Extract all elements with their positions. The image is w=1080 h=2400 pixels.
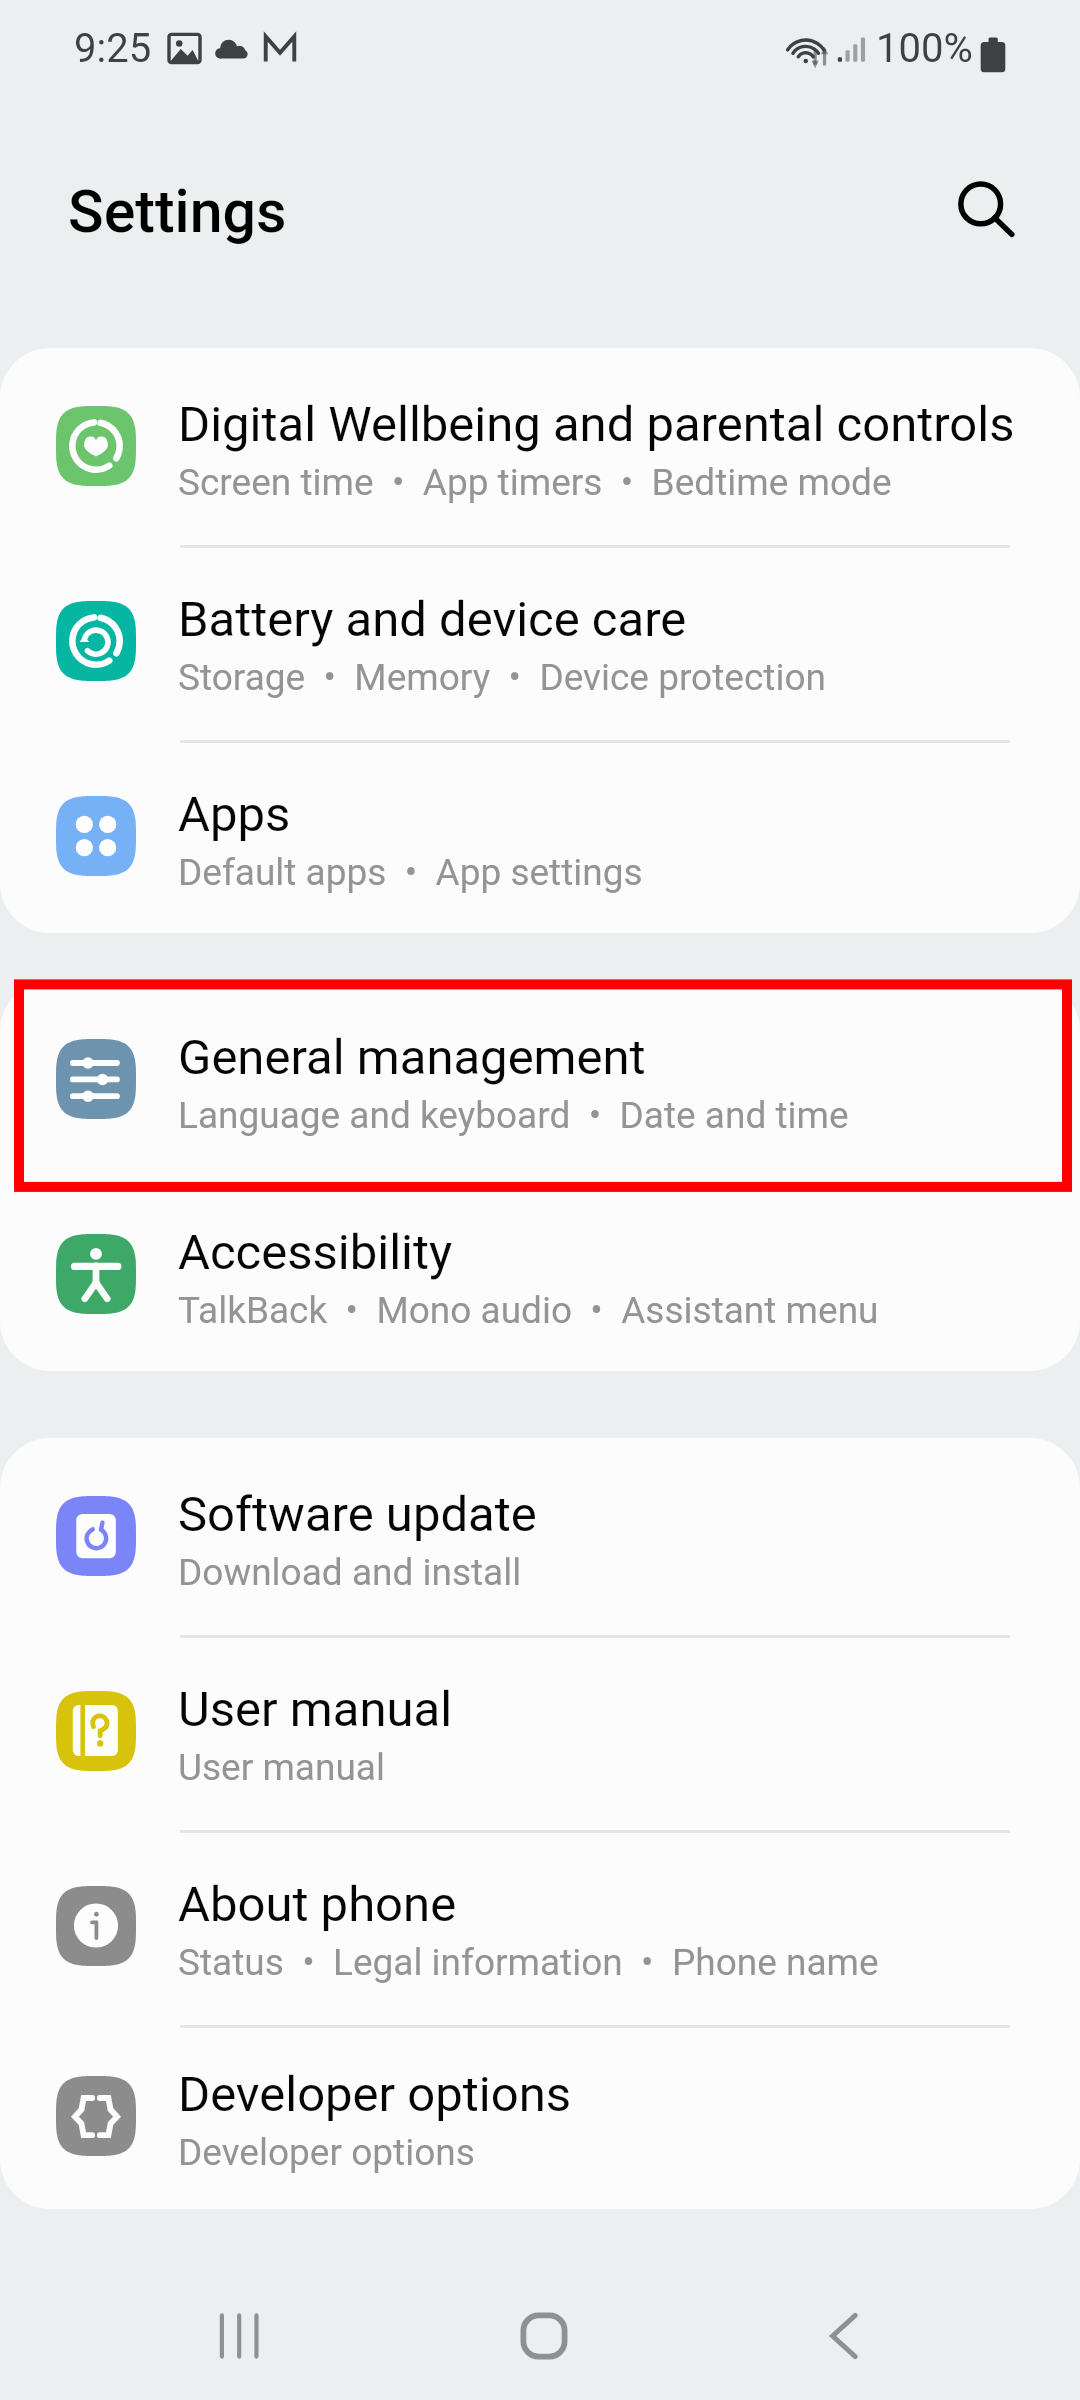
staticText: Developer options [178,2066,572,2123]
staticText: Developer options [178,2131,475,2174]
button[interactable]: General management [0,981,1080,1176]
button[interactable]: Home [479,2271,609,2400]
staticText: Language and keyboard • Date and time [178,1094,849,1137]
staticText: Storage • Memory • Device protection [178,656,826,699]
button[interactable]: Search [938,162,1038,262]
button[interactable]: Software update [0,1438,1080,1633]
staticText: Screen time • App timers • Bedtime mode [178,461,892,504]
staticText: Accessibility [178,1224,453,1281]
staticText: Apps [178,786,291,843]
staticText: Download and install [178,1551,522,1594]
staticText: 9:25 [74,25,152,72]
button[interactable]: Digital Wellbeing and parental controls [0,348,1080,543]
button[interactable]: Battery and device care [0,543,1080,738]
button[interactable]: User manual [0,1633,1080,1828]
staticText: Default apps • App settings [178,851,643,894]
staticText: TalkBack • Mono audio • Assistant menu [178,1289,879,1332]
staticText: Software update [178,1486,537,1543]
staticText: Status • Legal information • Phone name [178,1941,879,1984]
button[interactable]: Apps [0,738,1080,933]
button[interactable]: Developer options [0,2023,1080,2209]
staticText: 100% [876,25,973,72]
button[interactable]: Back [783,2271,913,2400]
staticText: User manual [178,1746,385,1789]
staticText: User manual [178,1681,453,1738]
button[interactable]: Recents [174,2271,304,2400]
staticText: Settings [68,177,287,246]
staticText: Battery and device care [178,591,687,648]
staticText: Digital Wellbeing and parental controls [178,396,1015,453]
staticText: About phone [178,1876,457,1933]
staticText: General management [178,1029,646,1086]
button[interactable]: About phone [0,1828,1080,2023]
button[interactable]: Accessibility [0,1176,1080,1371]
